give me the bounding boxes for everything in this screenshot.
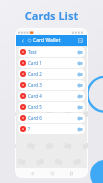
staticText: Card 2 [28, 71, 42, 77]
button[interactable]: Card 2 [18, 69, 85, 79]
staticText: Card 6 [28, 115, 42, 121]
button[interactable]: Card 4 [18, 91, 85, 101]
staticText: Card 1 [28, 60, 42, 66]
button[interactable]: Recents [67, 169, 75, 177]
button[interactable]: Test [18, 47, 85, 57]
button[interactable]: ? [18, 124, 85, 134]
staticText: ? [28, 126, 31, 132]
staticText: Test [28, 49, 37, 55]
button[interactable]: Home [48, 169, 56, 177]
staticText: Card 3 [28, 82, 42, 88]
button[interactable]: Add card [77, 37, 84, 44]
staticText: Card 5 [28, 104, 42, 110]
button[interactable]: Card 3 [18, 80, 85, 90]
button[interactable]: Card 1 [18, 58, 85, 68]
staticText: Card Wallet [33, 37, 61, 44]
staticText: Cards List [0, 8, 103, 23]
button[interactable]: Card 5 [18, 102, 85, 112]
button[interactable]: Back [19, 37, 26, 44]
button[interactable]: Back [28, 169, 36, 177]
button[interactable]: Card 6 [18, 113, 85, 123]
staticText: Card 4 [28, 93, 42, 99]
